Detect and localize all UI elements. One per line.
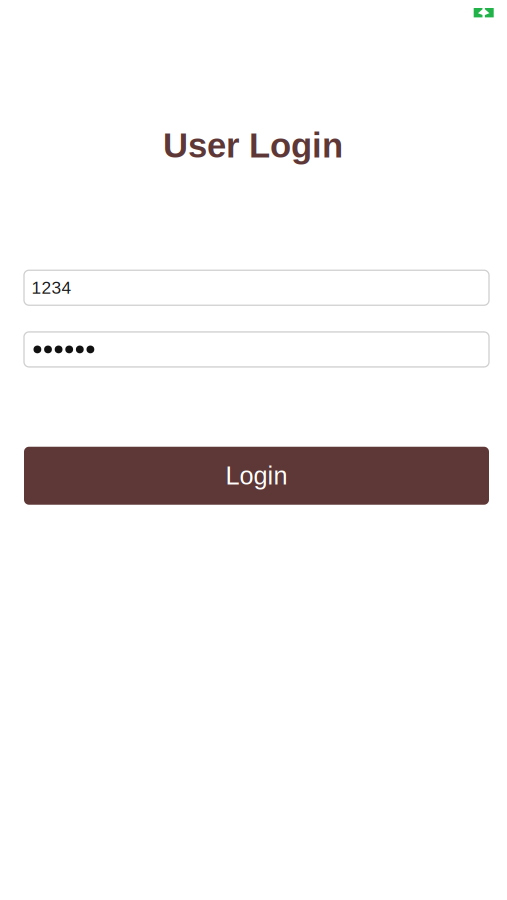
staticText: User Login (163, 126, 343, 165)
button[interactable]: Expand (474, 0, 507, 17)
button[interactable]: Login (24, 447, 489, 505)
staticText: 1234 (31, 278, 71, 297)
staticText: Login (225, 462, 287, 490)
